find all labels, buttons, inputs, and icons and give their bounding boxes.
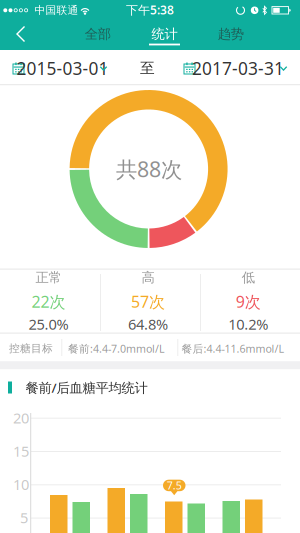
staticText: 5 [20, 508, 28, 527]
staticText: 64.8% [128, 314, 168, 334]
button[interactable]: 趋势 [214, 22, 248, 46]
staticText: 7.5 [167, 478, 182, 492]
staticText: 餐前:4.4-7.0mmol/L [68, 341, 165, 356]
staticText: 9次 [236, 291, 261, 312]
staticText: 餐前/后血糖平均统计 [25, 379, 147, 396]
staticText: 25.0% [28, 314, 68, 334]
staticText: 57次 [131, 291, 165, 312]
staticText: 共88次 [116, 155, 182, 183]
button[interactable]: 2017-03-31 [179, 50, 296, 85]
staticText: 餐后:4.4-11.6mmol/L [181, 341, 284, 356]
staticText: 统计 [151, 26, 177, 42]
button[interactable]: Back [0, 19, 44, 50]
staticText: 全部 [85, 26, 111, 42]
button[interactable]: 全部 [81, 22, 115, 46]
button[interactable]: 统计 [147, 22, 181, 46]
staticText: 15 [13, 441, 29, 461]
staticText: 2015-03-01 [16, 57, 108, 80]
button[interactable]: 2015-03-01 [8, 50, 115, 85]
staticText: 2017-03-31 [192, 57, 284, 80]
staticText: 趋势 [218, 26, 244, 42]
staticText: 低 [242, 269, 255, 286]
staticText: 22次 [31, 291, 65, 312]
staticText: 正常 [35, 269, 61, 286]
staticText: 至 [140, 59, 155, 77]
staticText: 下午5:38 [126, 2, 174, 18]
staticText: 20 [13, 408, 29, 427]
staticText: 中国联通 [34, 4, 78, 17]
staticText: 10 [13, 475, 29, 494]
staticText: 10.2% [228, 314, 268, 334]
staticText: 控糖目标 [9, 342, 53, 355]
staticText: 高 [141, 269, 154, 286]
